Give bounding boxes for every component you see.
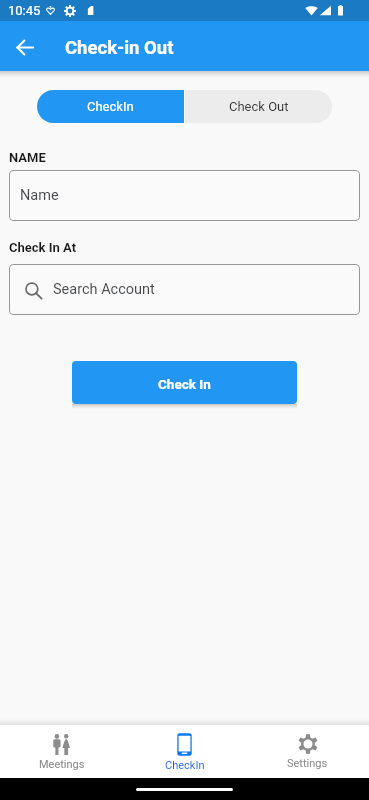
staticText: Check In — [158, 376, 211, 392]
button[interactable]: CheckIn — [37, 90, 184, 123]
button[interactable]: Search Account — [9, 264, 360, 315]
staticText: 10:45 — [8, 3, 41, 18]
button[interactable]: Meetings — [0, 725, 123, 778]
staticText: Meetings — [39, 758, 85, 771]
button[interactable]: Back — [7, 29, 43, 65]
button[interactable]: Name — [9, 170, 360, 221]
button[interactable]: Check Out — [185, 90, 332, 123]
staticText: CheckIn — [165, 759, 205, 772]
staticText: Check In At — [9, 240, 77, 255]
button[interactable]: CheckIn — [123, 725, 246, 778]
staticText: Name — [20, 187, 59, 204]
staticText: Check Out — [229, 99, 289, 114]
button[interactable]: Check In — [72, 361, 297, 404]
staticText: Settings — [287, 757, 328, 770]
button[interactable]: Settings — [246, 725, 369, 778]
staticText: Search Account — [53, 281, 155, 298]
staticText: Check-in Out — [65, 37, 174, 59]
staticText: NAME — [9, 150, 46, 165]
staticText: CheckIn — [87, 99, 134, 114]
